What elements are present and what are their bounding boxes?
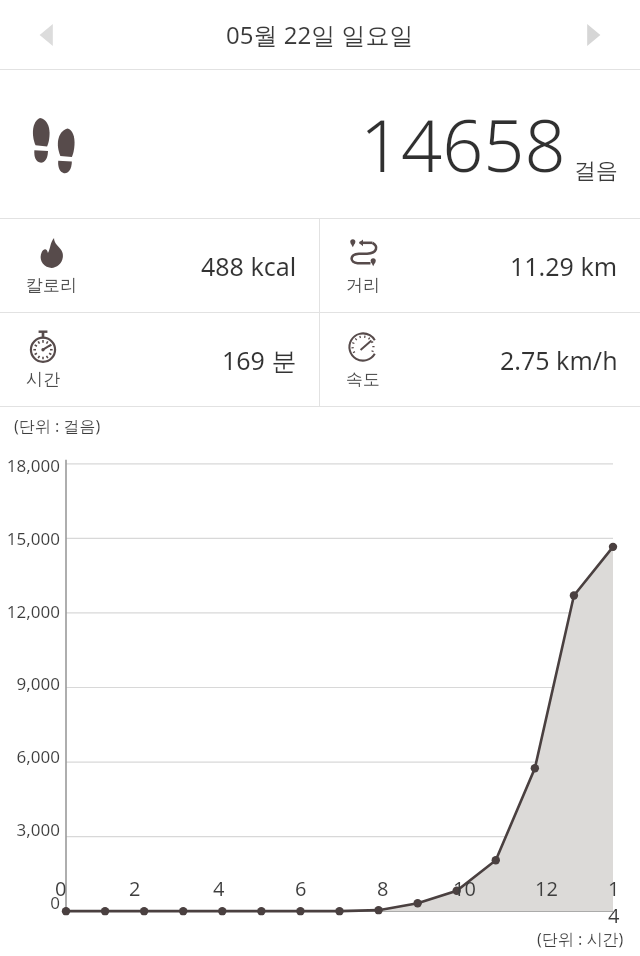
button[interactable]: 거리 <box>320 219 640 312</box>
staticText: 거리 <box>346 275 380 296</box>
staticText: 6,000 <box>0 745 60 765</box>
staticText: 0 <box>55 875 67 902</box>
button[interactable] <box>0 407 640 956</box>
staticText: 2 <box>129 875 141 902</box>
button[interactable]: 칼로리 <box>0 219 319 312</box>
staticText: 걸음 <box>574 157 618 185</box>
staticText: 3,000 <box>0 818 60 838</box>
staticText: 14 <box>608 875 629 929</box>
button[interactable]: 14658 <box>0 70 640 218</box>
staticText: 12,000 <box>0 600 60 620</box>
staticText: 8 <box>377 875 389 902</box>
staticText: 11.29 km <box>510 249 618 283</box>
staticText: 칼로리 <box>26 275 77 296</box>
staticText: 15,000 <box>0 527 60 547</box>
staticText: 2.75 km/h <box>500 343 618 377</box>
button[interactable]: Previous day <box>26 13 70 57</box>
button[interactable]: 시간 <box>0 313 319 406</box>
staticText: 10 <box>453 875 476 902</box>
staticText: 4 <box>213 875 225 902</box>
staticText: 0 <box>0 891 60 911</box>
staticText: 05월 22일 일요일 <box>226 18 414 51</box>
staticText: (단위 : 시간) <box>537 928 624 950</box>
staticText: 14658 <box>360 95 566 193</box>
staticText: (단위 : 걸음) <box>14 415 101 437</box>
staticText: 12 <box>535 875 558 902</box>
staticText: 9,000 <box>0 672 60 692</box>
staticText: 속도 <box>346 369 380 390</box>
staticText: 488 kcal <box>201 249 297 283</box>
staticText: 169 분 <box>222 343 297 377</box>
button[interactable]: 속도 <box>320 313 640 406</box>
button[interactable]: Next day <box>570 13 614 57</box>
staticText: 6 <box>295 875 307 902</box>
staticText: 시간 <box>26 369 60 390</box>
staticText: 18,000 <box>0 454 60 474</box>
